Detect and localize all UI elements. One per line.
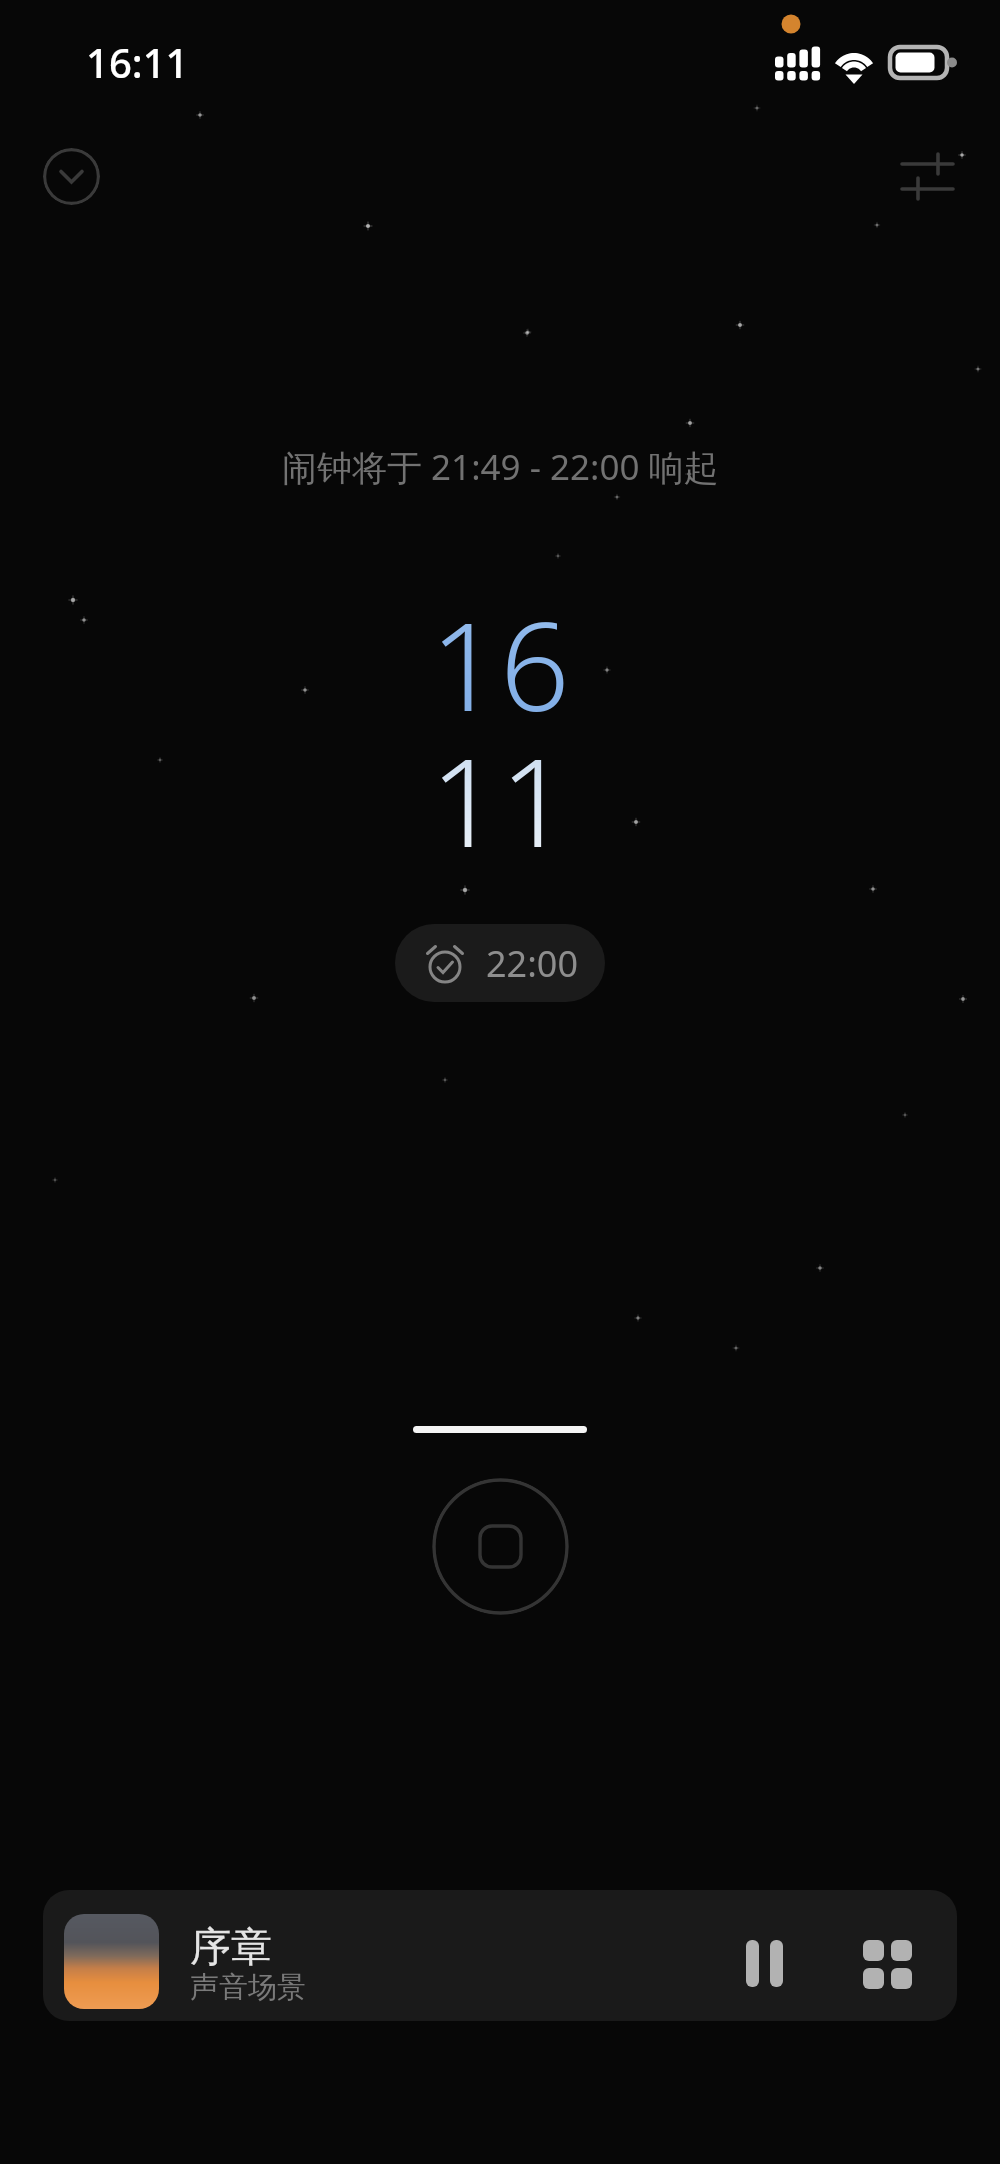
button[interactable]: 序章 [43,1890,957,2021]
button[interactable]: Stop [432,1478,569,1615]
staticText: 序章 [190,1922,272,1974]
staticText: 闹钟将于 21:49 - 22:00 响起 [282,443,719,491]
button[interactable]: Pause [727,1920,801,1992]
button[interactable]: Settings [880,140,974,212]
staticText: 11 [430,717,570,883]
button[interactable]: Collapse [43,148,100,205]
button[interactable]: Playlist [849,1920,925,1992]
staticText: 22:00 [486,939,579,988]
staticText: 16 [430,581,570,747]
button[interactable]: 22:00 [395,924,605,1002]
staticText: 16:11 [86,35,189,89]
staticText: 声音场景 [190,1969,306,2006]
